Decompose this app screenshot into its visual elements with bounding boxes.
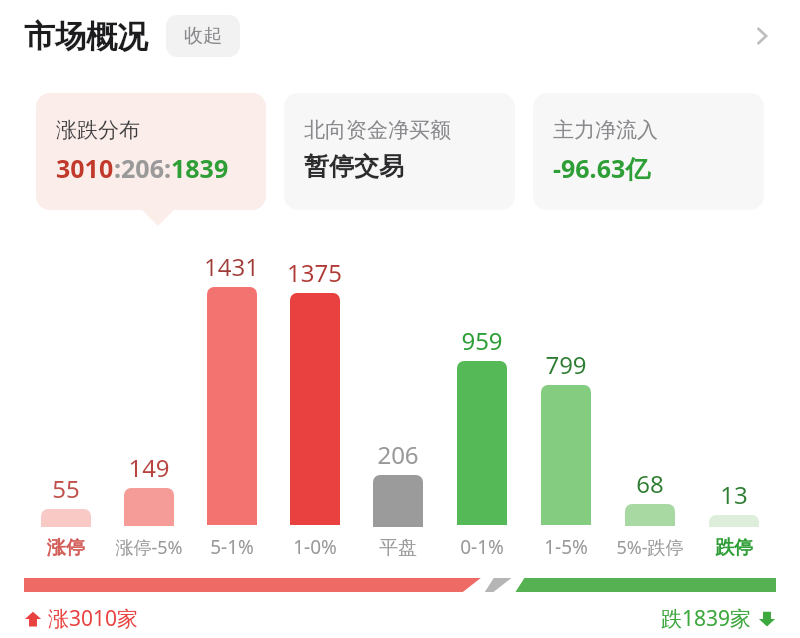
staticText: 3010 [56, 151, 114, 185]
staticText: 1-5% [544, 534, 588, 560]
button[interactable]: More [742, 16, 782, 56]
button[interactable]: 13 [692, 250, 776, 560]
other: Down [758, 610, 776, 628]
staticText: -96.63亿 [553, 151, 651, 185]
button[interactable]: 涨跌分布 [36, 93, 266, 210]
staticText: 北向资金净买额 [304, 117, 451, 143]
staticText: 959 [461, 324, 503, 357]
staticText: 市场概况 [24, 17, 148, 56]
staticText: 5-1% [210, 534, 254, 560]
staticText: 暂停交易 [304, 151, 404, 182]
staticText: 799 [545, 348, 587, 381]
staticText: 149 [128, 451, 170, 484]
other: Up [24, 610, 42, 628]
staticText: 涨跌分布 [56, 117, 140, 143]
button[interactable]: 206 [356, 250, 440, 560]
button[interactable]: 55 [24, 250, 107, 560]
button[interactable]: 北向资金净买额 [284, 93, 515, 210]
staticText: 涨停 [47, 536, 85, 560]
button[interactable]: 959 [440, 250, 524, 560]
staticText: 0-1% [460, 534, 504, 560]
staticText: 跌停 [715, 536, 753, 560]
staticText: 平盘 [379, 536, 417, 560]
staticText: 1-0% [293, 534, 337, 560]
staticText: 5%-跌停 [616, 535, 684, 560]
button[interactable]: 主力净流入 [533, 93, 764, 210]
button[interactable]: 799 [524, 250, 608, 560]
staticText: 1839 [171, 151, 229, 185]
button[interactable]: 收起 [166, 15, 240, 57]
staticText: 1375 [287, 256, 342, 289]
staticText: 68 [636, 467, 664, 500]
button[interactable]: 1431 [190, 250, 273, 560]
button[interactable]: Up [24, 604, 139, 633]
button[interactable]: 68 [608, 250, 692, 560]
staticText: 收起 [184, 24, 222, 48]
staticText: 涨3010家 [48, 604, 139, 633]
button[interactable]: 1375 [273, 250, 356, 560]
staticText: 1431 [204, 250, 259, 283]
staticText: 55 [52, 472, 80, 505]
button[interactable]: 跌1839家 [661, 604, 776, 633]
staticText: 206 [377, 438, 419, 471]
button[interactable]: 市场概况 [0, 0, 800, 72]
staticText: 涨停-5% [115, 535, 183, 560]
staticText: :206: [114, 151, 171, 185]
staticText: 跌1839家 [661, 604, 752, 633]
staticText: 13 [720, 478, 748, 511]
staticText: 主力净流入 [553, 117, 658, 143]
button[interactable]: 149 [107, 250, 190, 560]
